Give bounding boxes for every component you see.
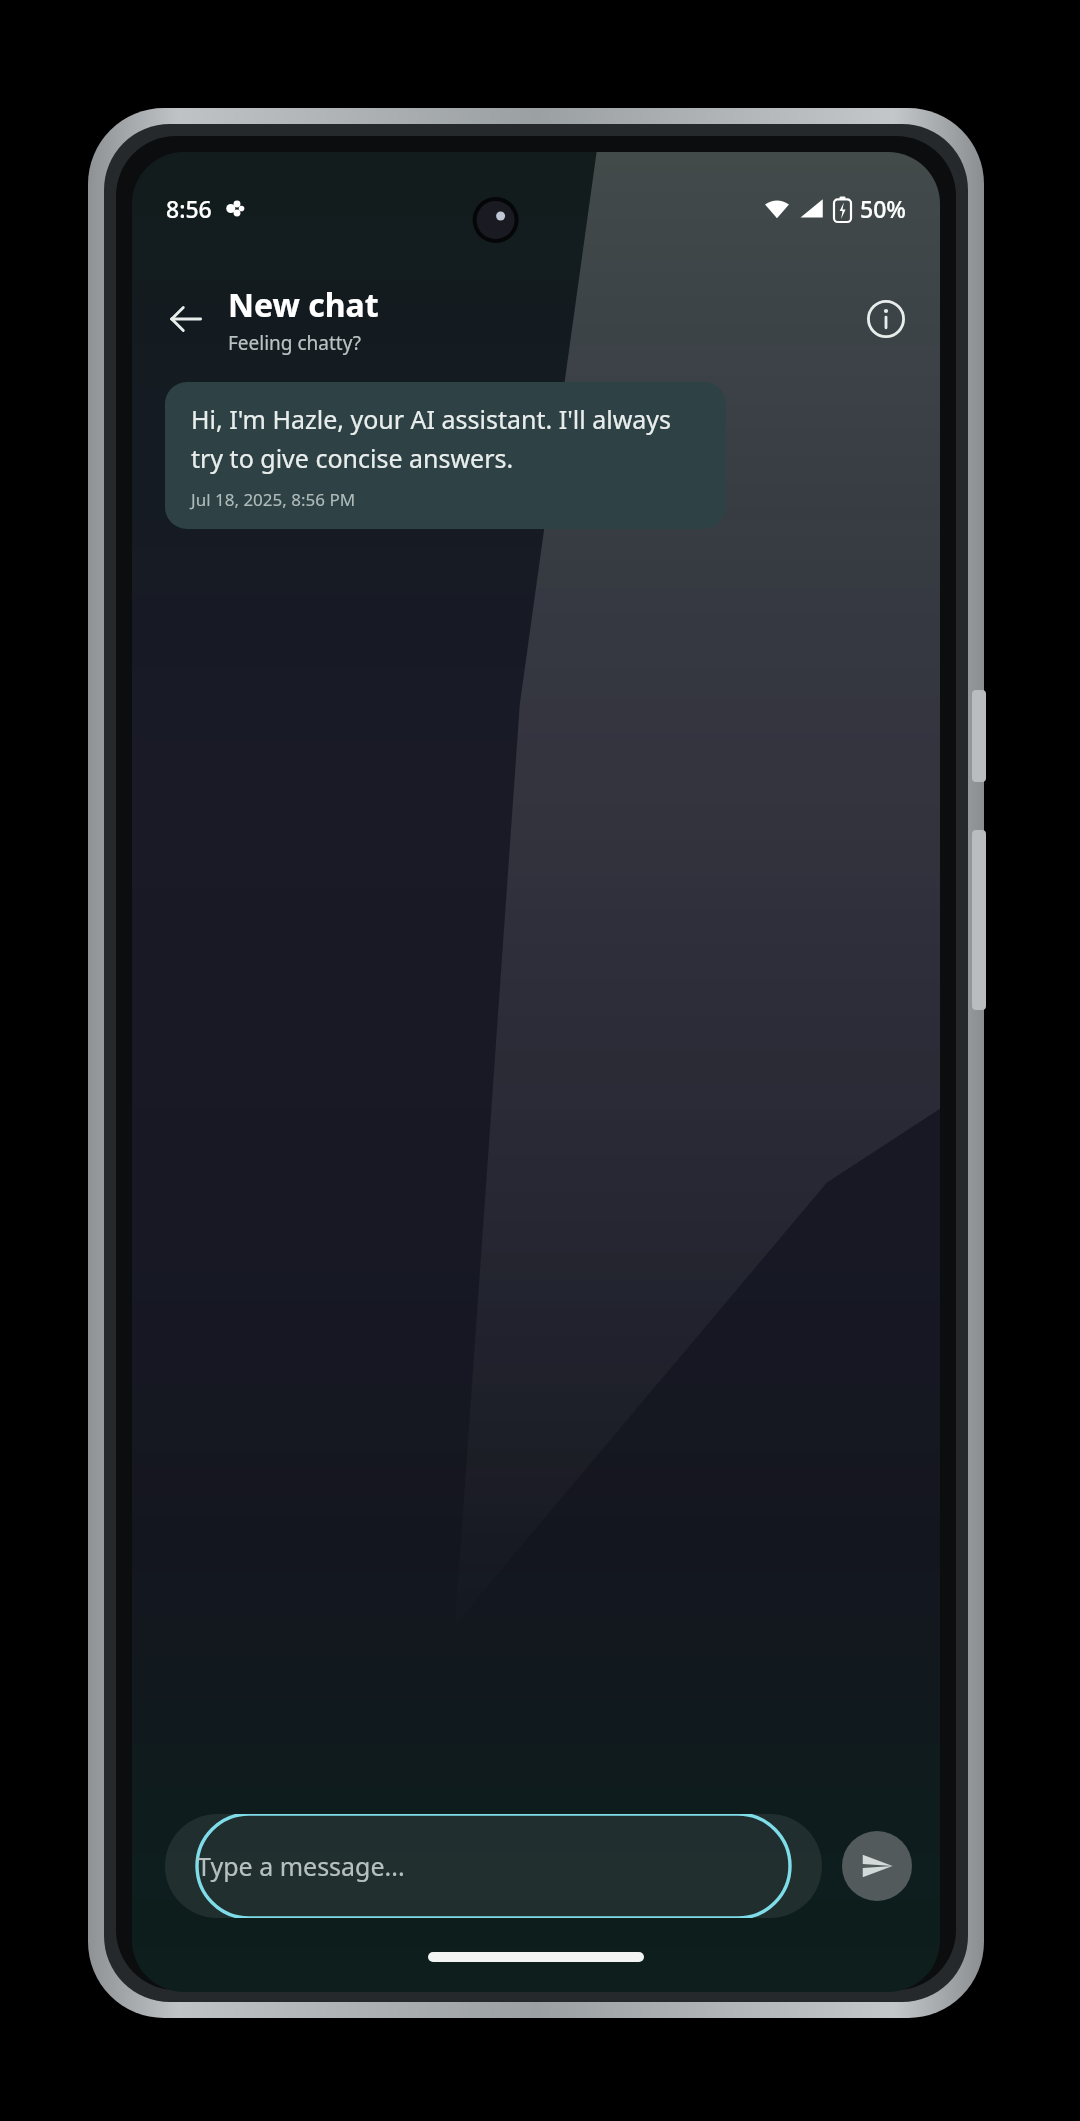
button[interactable]: Information [850,283,922,355]
staticText: Feeling chatty? [228,330,362,356]
button[interactable]: Hi, I'm Hazle, your AI assistant. I'll a… [165,382,726,529]
staticText: Jul 18, 2025, 8:56 PM [191,488,356,511]
staticText: Hi, I'm Hazle, your AI assistant. I'll a… [191,402,704,475]
staticText: 50% [860,193,906,224]
staticText: New chat [228,283,379,327]
button[interactable]: Type a message... [165,1814,822,1918]
staticText: 8:56 [166,193,212,224]
button[interactable]: Send [842,1831,912,1901]
staticText: Type a message... [197,1849,405,1883]
button[interactable]: Back [150,283,222,355]
